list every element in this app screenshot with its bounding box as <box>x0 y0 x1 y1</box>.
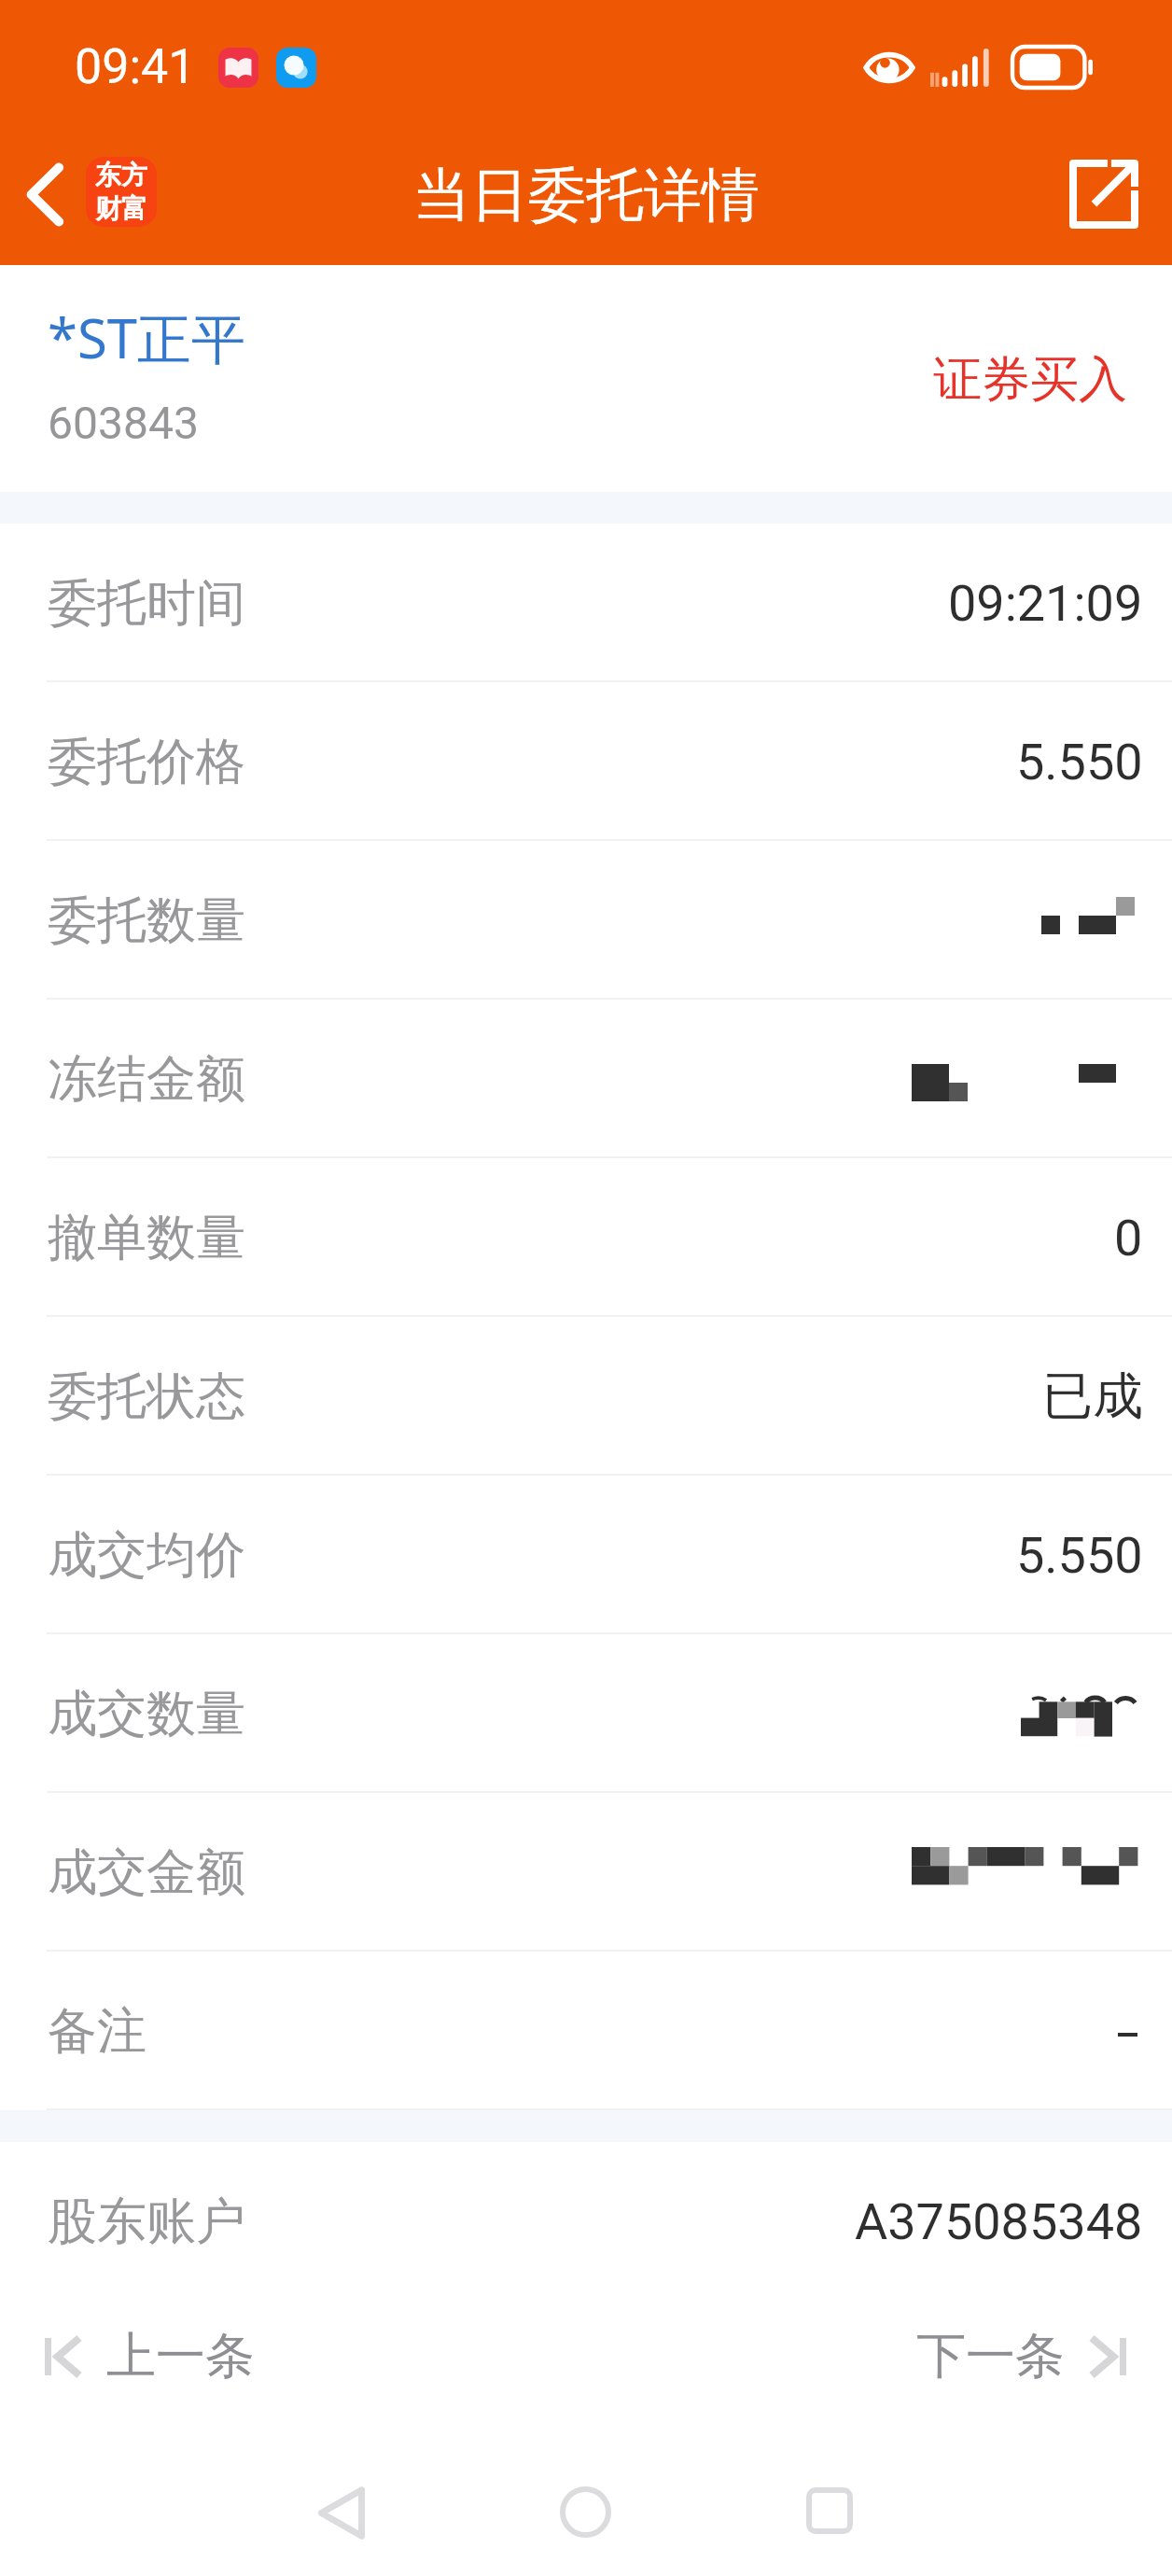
staticText: 东方 <box>95 159 147 191</box>
staticText: 委托数量 <box>48 889 245 952</box>
staticText: 0 <box>1114 1209 1143 1267</box>
button[interactable]: 委托时间 <box>0 524 1172 682</box>
staticText: 股东账户 <box>48 2191 245 2253</box>
staticText: 成交金额 <box>48 1841 245 1904</box>
button[interactable]: 成交金额 <box>0 1793 1172 1952</box>
staticText: 当日委托详情 <box>412 159 760 231</box>
staticText: 5.550 <box>1016 1526 1143 1585</box>
button[interactable]: 委托状态 <box>0 1317 1172 1476</box>
staticText: 财富 <box>95 192 147 225</box>
staticText: 上一条 <box>106 2325 255 2387</box>
staticText: A375085348 <box>855 2192 1143 2251</box>
staticText: 09:41 <box>75 38 196 95</box>
button[interactable]: 委托价格 <box>0 682 1172 841</box>
staticText: 已成 <box>1042 1365 1143 1428</box>
staticText: 603843 <box>48 397 199 449</box>
staticText: 下一条 <box>916 2325 1065 2387</box>
button[interactable]: 下一条 <box>916 2325 1126 2387</box>
staticText: 成交均价 <box>48 1524 245 1587</box>
button[interactable]: 冻结金额 <box>0 1000 1172 1158</box>
button[interactable]: Home <box>534 2460 636 2563</box>
staticText: 撤单数量 <box>48 1207 245 1269</box>
button[interactable]: Share <box>1057 147 1151 241</box>
button[interactable]: 成交均价 <box>0 1476 1172 1634</box>
staticText: 成交数量 <box>48 1683 245 1745</box>
button[interactable]: Recents <box>778 2459 881 2562</box>
staticText: 09:21:09 <box>948 574 1143 633</box>
button[interactable]: 委托数量 <box>0 841 1172 1000</box>
staticText: 备注 <box>48 2000 146 2063</box>
button[interactable]: 撤单数量 <box>0 1158 1172 1317</box>
staticText: 委托价格 <box>48 731 245 793</box>
button[interactable]: Back <box>290 2461 393 2564</box>
staticText: 委托时间 <box>48 572 245 635</box>
button[interactable]: 备注 <box>0 1952 1172 2110</box>
staticText: 证券买入 <box>933 349 1127 411</box>
button[interactable]: 成交数量 <box>0 1634 1172 1793</box>
staticText: 冻结金额 <box>48 1048 245 1111</box>
staticText: 5.550 <box>1016 733 1143 791</box>
button[interactable]: 上一条 <box>45 2325 255 2387</box>
button[interactable]: 股东账户 <box>0 2142 1172 2301</box>
button[interactable]: Back <box>7 157 82 231</box>
staticText: 委托状态 <box>48 1365 245 1428</box>
staticText: *ST正平 <box>48 301 246 374</box>
